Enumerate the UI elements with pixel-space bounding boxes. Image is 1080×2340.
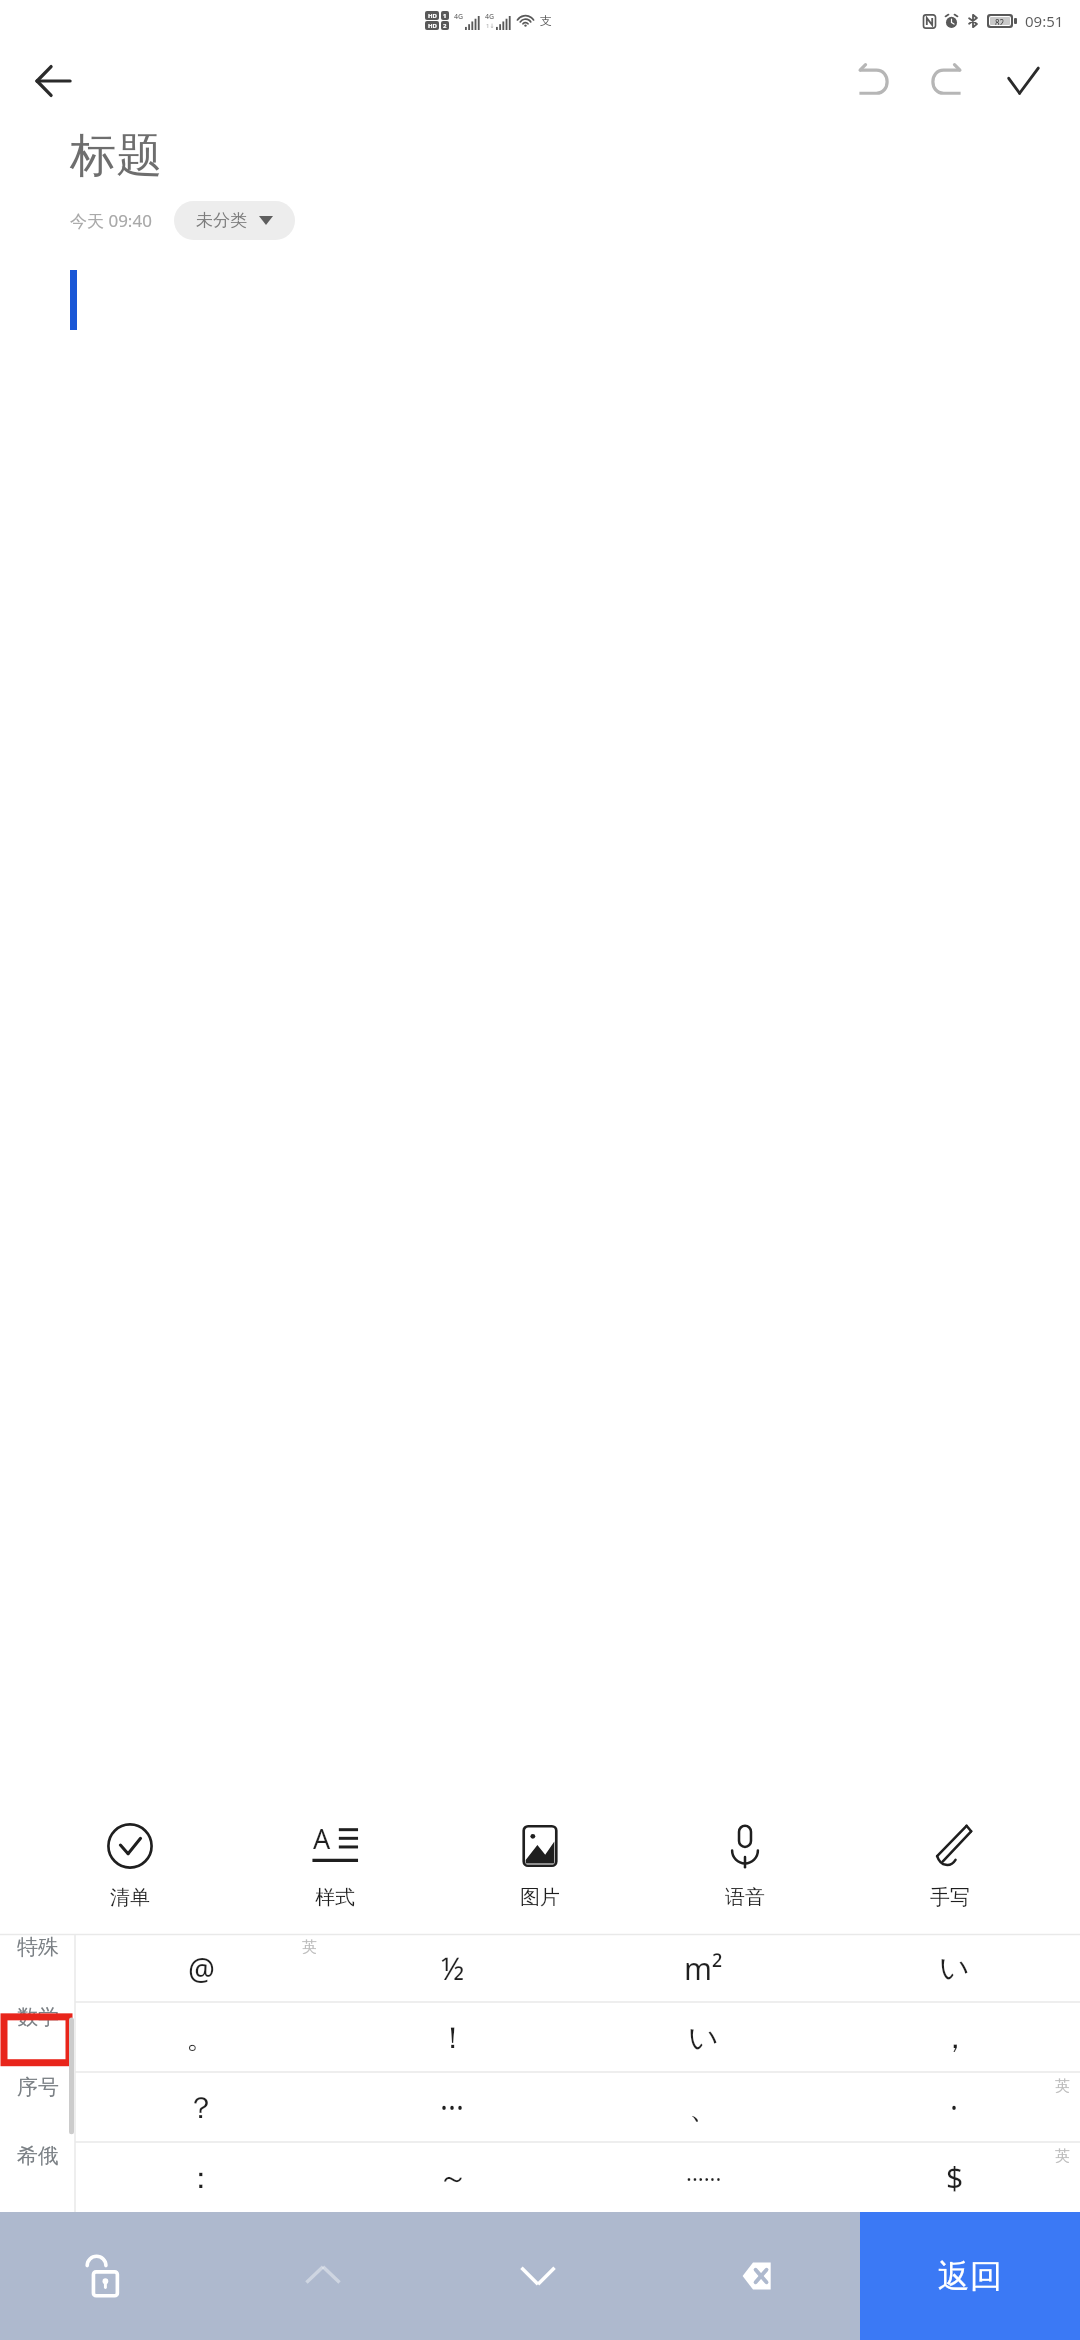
staticText: 。	[186, 2019, 216, 2057]
staticText: 英	[1055, 2077, 1070, 2096]
button[interactable]: Page down	[430, 2212, 645, 2340]
button[interactable]: 图片	[465, 1813, 615, 1916]
button[interactable]: Save	[992, 50, 1054, 112]
button[interactable]: ·	[829, 2073, 1080, 2142]
button[interactable]: ½	[327, 1934, 578, 2002]
button[interactable]: 数学	[0, 1982, 75, 2052]
button[interactable]: Redo	[916, 50, 978, 112]
staticText: 清单	[110, 1885, 150, 1910]
staticText: $	[946, 2157, 964, 2198]
staticText: い	[939, 1949, 970, 1987]
button[interactable]	[0, 240, 1080, 1794]
button[interactable]: ······	[578, 2143, 829, 2212]
staticText: ！	[438, 2019, 468, 2057]
staticText: 希俄	[17, 2143, 59, 2169]
button[interactable]: ？	[75, 2073, 327, 2142]
staticText: 标题	[70, 127, 162, 185]
staticText: 返回	[938, 2256, 1002, 2296]
button[interactable]: 、	[578, 2073, 829, 2142]
button[interactable]: Undo	[842, 50, 904, 112]
staticText: 图片	[520, 1885, 560, 1910]
staticText: 82	[995, 17, 1005, 25]
button[interactable]: 手写	[875, 1813, 1025, 1916]
button[interactable]: ···	[327, 2073, 578, 2142]
button[interactable]: ：	[75, 2143, 327, 2212]
staticText: ？	[186, 2089, 216, 2127]
button[interactable]: 语音	[670, 1813, 820, 1916]
button[interactable]: 清单	[55, 1813, 205, 1916]
staticText: ～	[438, 2159, 468, 2197]
staticText: HD	[428, 12, 437, 20]
staticText: @	[188, 1948, 215, 1989]
staticText: ：	[186, 2159, 216, 2197]
staticText: 英	[302, 1938, 317, 1957]
staticText: 未分类	[196, 210, 247, 231]
staticText: 4G	[454, 12, 464, 22]
staticText: い	[688, 2019, 719, 2057]
button[interactable]: @	[75, 1934, 327, 2002]
button[interactable]: 序号	[0, 2052, 75, 2122]
staticText: 1↓	[486, 22, 495, 30]
button[interactable]: 返回	[860, 2212, 1080, 2340]
button[interactable]: Back	[24, 52, 82, 110]
staticText: A	[313, 1820, 331, 1857]
button[interactable]: 特殊	[0, 1912, 75, 1982]
staticText: 样式	[315, 1885, 355, 1910]
button[interactable]: 未分类	[174, 201, 295, 240]
staticText: 手写	[930, 1885, 970, 1910]
button[interactable]: い	[829, 1934, 1080, 2002]
staticText: ······	[686, 2163, 722, 2193]
staticText: ，	[940, 2019, 970, 2057]
staticText: 2	[443, 22, 447, 30]
button[interactable]: Delete	[645, 2212, 860, 2340]
staticText: 、	[689, 2089, 719, 2127]
staticText: 英	[1055, 2147, 1070, 2166]
button[interactable]: ，	[829, 2003, 1080, 2072]
button[interactable]: Lock	[0, 2212, 215, 2340]
staticText: 支	[540, 13, 552, 28]
staticText: m²	[684, 1948, 723, 1989]
staticText: 语音	[725, 1885, 765, 1910]
staticText: ·	[950, 2087, 959, 2128]
staticText: ···	[440, 2087, 465, 2128]
button[interactable]: A	[260, 1813, 410, 1916]
staticText: HD	[428, 22, 437, 30]
staticText: 特殊	[17, 1934, 59, 1960]
staticText: ½	[441, 1948, 465, 1989]
button[interactable]: $	[829, 2143, 1080, 2212]
staticText: 1	[443, 12, 447, 20]
button[interactable]: 希俄	[0, 2122, 75, 2190]
button[interactable]: い	[578, 2003, 829, 2072]
staticText: 09:51	[1025, 11, 1064, 31]
staticText: 序号	[17, 2074, 59, 2100]
staticText: 4G	[485, 12, 495, 22]
button[interactable]: 。	[75, 2003, 327, 2072]
staticText: 数学	[17, 2004, 59, 2030]
staticText: 今天 09:40	[70, 209, 152, 232]
button[interactable]: ～	[327, 2143, 578, 2212]
button[interactable]: m²	[578, 1934, 829, 2002]
button[interactable]: ！	[327, 2003, 578, 2072]
